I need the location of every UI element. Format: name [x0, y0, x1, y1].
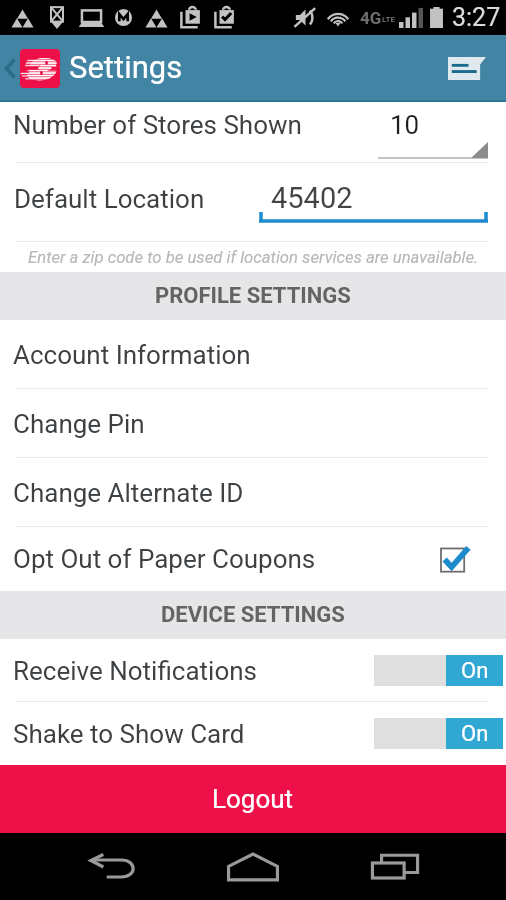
staticText: Account Information: [13, 340, 251, 370]
staticText: DEVICE SETTINGS: [161, 602, 345, 628]
staticText: 45402: [271, 181, 353, 215]
staticText: Number of Stores Shown: [13, 110, 302, 140]
button[interactable]: On: [374, 718, 503, 749]
staticText: Enter a zip code to be used if location …: [28, 248, 479, 268]
button[interactable]: Account Information: [0, 320, 506, 389]
button[interactable]: Change Alternate ID: [0, 458, 506, 527]
staticText: Shake to Show Card: [13, 719, 245, 749]
button[interactable]: Home: [205, 833, 301, 900]
staticText: 3:27: [452, 3, 501, 32]
staticText: 10: [390, 110, 420, 140]
staticText: PROFILE SETTINGS: [155, 283, 351, 309]
button[interactable]: Logout: [0, 765, 506, 833]
button[interactable]: Opt Out of Paper Coupons: [0, 527, 506, 591]
staticText: Logout: [212, 784, 294, 814]
staticText: Change Pin: [13, 409, 145, 439]
button[interactable]: 45402: [259, 163, 488, 242]
button[interactable]: Recents: [347, 833, 443, 900]
staticText: 4G: [360, 8, 382, 28]
staticText: On: [461, 658, 489, 684]
button[interactable]: Back: [64, 833, 160, 900]
button[interactable]: Menu: [428, 35, 506, 102]
staticText: Opt Out of Paper Coupons: [13, 544, 316, 574]
button[interactable]: Change Pin: [0, 389, 506, 458]
staticText: Receive Notifications: [13, 656, 257, 686]
staticText: Settings: [69, 49, 183, 85]
staticText: On: [461, 721, 489, 747]
button[interactable]: Back: [0, 35, 21, 102]
staticText: LTE: [382, 15, 395, 24]
button[interactable]: Number of Stores Shown: [0, 102, 506, 163]
staticText: Change Alternate ID: [13, 478, 244, 508]
staticText: Default Location: [14, 184, 205, 214]
button[interactable]: On: [374, 655, 503, 686]
